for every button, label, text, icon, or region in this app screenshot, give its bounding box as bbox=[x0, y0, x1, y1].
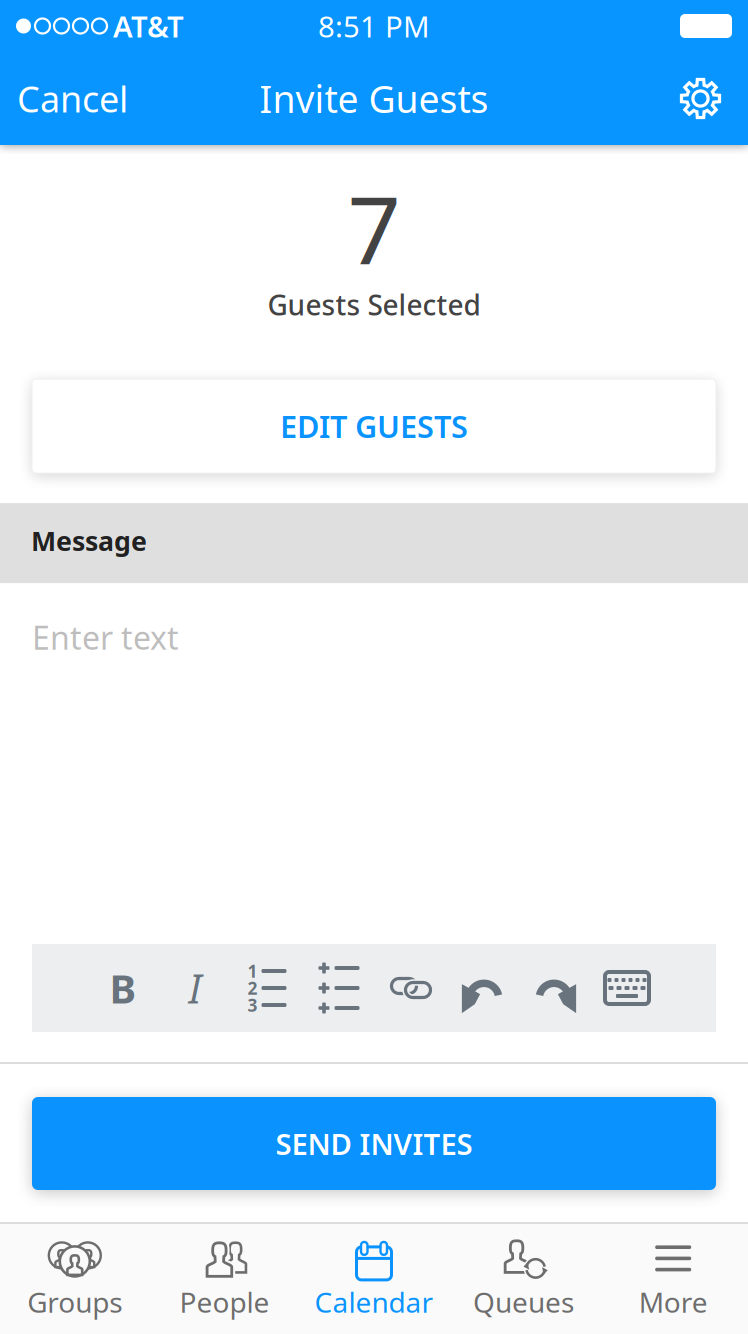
staticText: 1 bbox=[247, 959, 257, 982]
button[interactable]: Insert link bbox=[375, 944, 447, 1032]
staticText: People bbox=[179, 1283, 269, 1321]
button[interactable]: Groups bbox=[0, 1224, 150, 1334]
button[interactable]: Redo bbox=[519, 944, 591, 1032]
button[interactable]: Bulleted list bbox=[303, 944, 375, 1032]
staticText: SEND INVITES bbox=[275, 1124, 472, 1163]
staticText: Groups bbox=[27, 1283, 122, 1321]
staticText: 2 bbox=[247, 976, 257, 999]
button[interactable]: EDIT GUESTS bbox=[32, 379, 716, 473]
staticText: AT&T bbox=[113, 6, 184, 45]
staticText: EDIT GUESTS bbox=[280, 406, 468, 446]
button[interactable]: Hide keyboard bbox=[591, 944, 663, 1032]
staticText: Guests Selected bbox=[267, 286, 480, 323]
staticText: Message bbox=[31, 523, 147, 558]
staticText: B bbox=[109, 961, 136, 1014]
staticText: Cancel bbox=[17, 75, 128, 122]
staticText: 7 bbox=[347, 166, 400, 290]
button[interactable]: Settings bbox=[653, 52, 748, 145]
button[interactable]: Undo bbox=[447, 944, 519, 1032]
button[interactable]: Calendar bbox=[299, 1224, 449, 1334]
staticText: 8:51 PM bbox=[318, 6, 430, 45]
staticText: 3 bbox=[247, 993, 257, 1016]
button[interactable]: SEND INVITES bbox=[32, 1097, 716, 1190]
staticText: More bbox=[639, 1283, 708, 1321]
button[interactable]: Cancel bbox=[0, 52, 145, 145]
button[interactable]: People bbox=[150, 1224, 299, 1334]
button[interactable]: Queues bbox=[449, 1224, 598, 1334]
staticText: Queues bbox=[473, 1283, 574, 1321]
button[interactable]: Numbered list bbox=[231, 944, 303, 1032]
button[interactable]: Italic bbox=[159, 944, 231, 1032]
staticText: Calendar bbox=[314, 1283, 433, 1321]
staticText: I bbox=[188, 961, 201, 1014]
staticText: Invite Guests bbox=[259, 74, 488, 123]
button[interactable]: More bbox=[598, 1224, 748, 1334]
button[interactable]: Bold bbox=[87, 944, 159, 1032]
staticText: Enter text bbox=[32, 616, 179, 659]
